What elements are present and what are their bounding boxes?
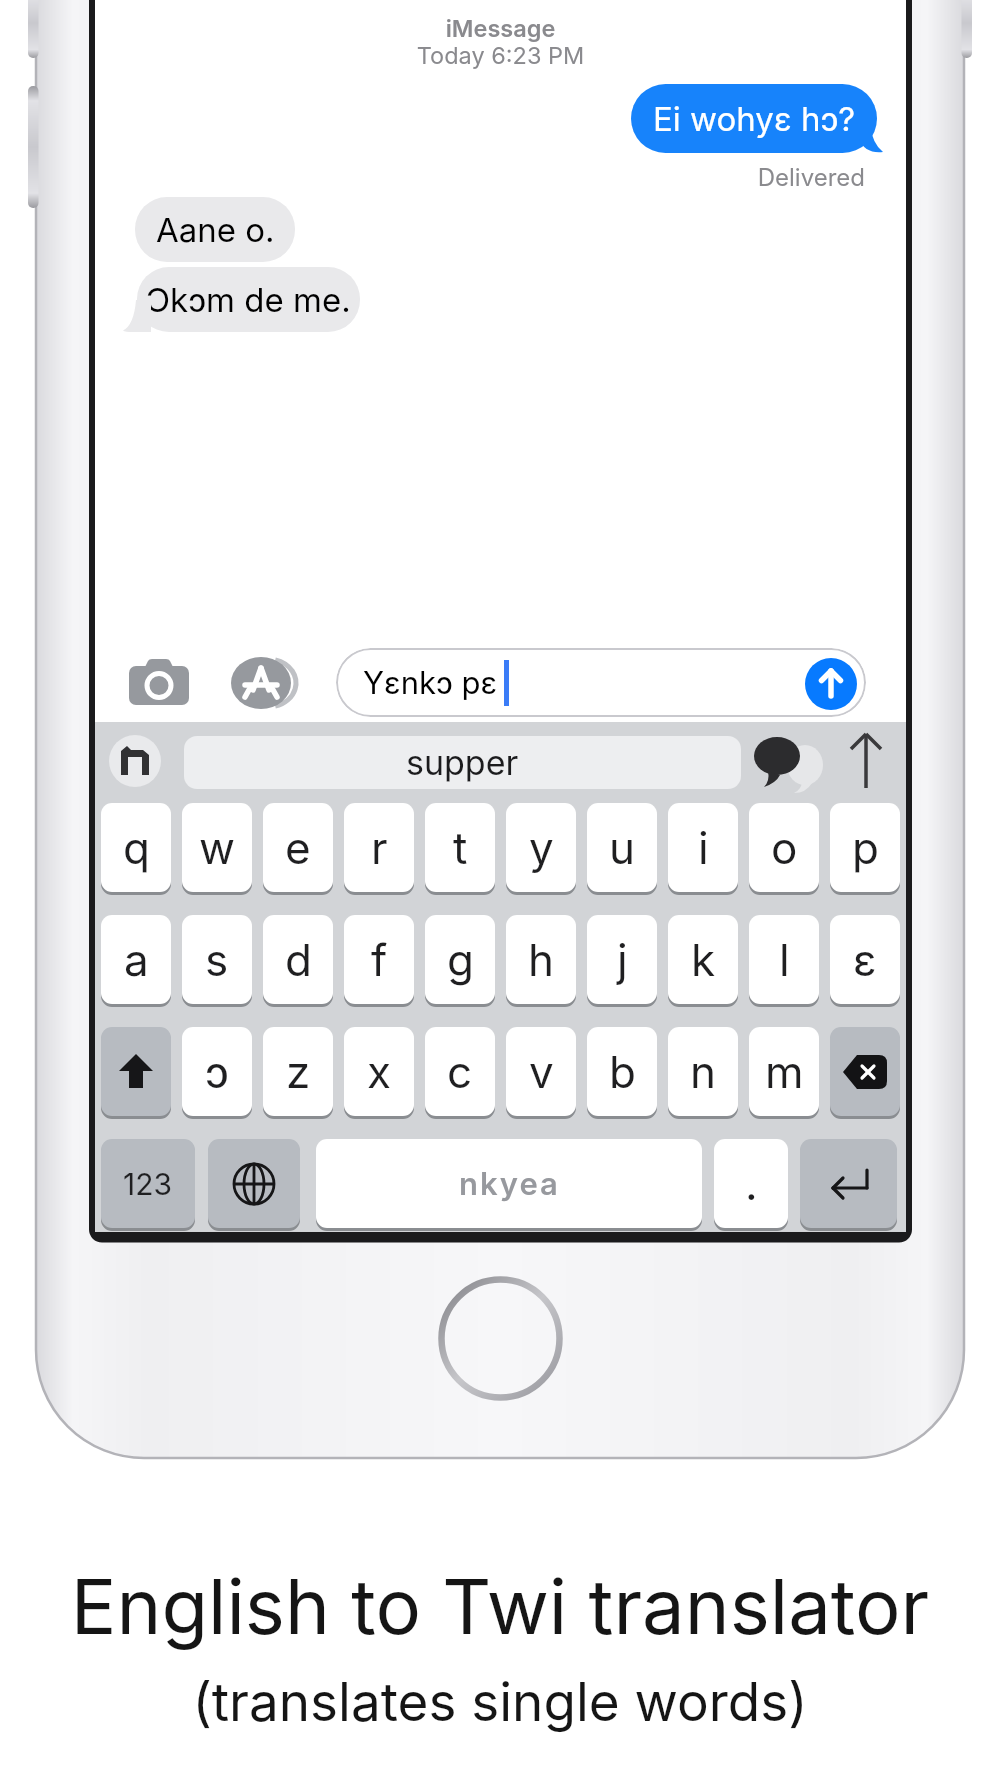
button[interactable] bbox=[830, 1027, 900, 1116]
staticText: supper bbox=[406, 742, 519, 783]
button[interactable]: w bbox=[182, 803, 252, 892]
button[interactable]: p bbox=[830, 803, 900, 892]
button[interactable]: s bbox=[182, 915, 252, 1004]
button[interactable]: Yɛnkɔ pɛ bbox=[336, 648, 866, 717]
staticText: f bbox=[371, 933, 388, 986]
button[interactable]: supper bbox=[184, 736, 741, 789]
button[interactable]: i bbox=[668, 803, 738, 892]
button[interactable]: ɛ bbox=[830, 915, 900, 1004]
button[interactable]: e bbox=[263, 803, 333, 892]
staticText: k bbox=[691, 933, 716, 986]
staticText: t bbox=[453, 821, 468, 874]
staticText: v bbox=[529, 1045, 554, 1098]
button[interactable] bbox=[800, 1139, 897, 1228]
staticText: Ɔkɔm de me. bbox=[146, 280, 351, 320]
staticText: c bbox=[447, 1045, 473, 1098]
button[interactable] bbox=[750, 735, 828, 801]
button[interactable]: v bbox=[506, 1027, 576, 1116]
staticText: e bbox=[285, 821, 311, 874]
staticText: r bbox=[371, 821, 388, 874]
staticText: l bbox=[779, 933, 790, 986]
button[interactable]: f bbox=[344, 915, 414, 1004]
button[interactable]: q bbox=[101, 803, 171, 892]
button[interactable]: r bbox=[344, 803, 414, 892]
button[interactable] bbox=[129, 659, 189, 705]
staticText: h bbox=[528, 933, 555, 986]
button[interactable]: o bbox=[749, 803, 819, 892]
staticText: a bbox=[124, 933, 149, 986]
staticText: nkyea bbox=[459, 1165, 560, 1203]
button[interactable]: g bbox=[425, 915, 495, 1004]
button[interactable] bbox=[231, 657, 299, 709]
button[interactable]: j bbox=[587, 915, 657, 1004]
staticText: ɔ bbox=[205, 1045, 229, 1098]
staticText: d bbox=[285, 933, 312, 986]
staticText: English to Twi translator bbox=[0, 1560, 1000, 1652]
staticText: Delivered bbox=[665, 163, 865, 191]
staticText: m bbox=[765, 1045, 804, 1098]
button[interactable]: l bbox=[749, 915, 819, 1004]
button[interactable]: z bbox=[263, 1027, 333, 1116]
staticText: q bbox=[123, 821, 150, 874]
staticText: (translates single words) bbox=[0, 1670, 1000, 1734]
staticText: iMessage bbox=[95, 14, 906, 42]
button[interactable]: Ɔkɔm de me. bbox=[137, 267, 360, 332]
button[interactable] bbox=[109, 735, 161, 787]
staticText: o bbox=[771, 821, 798, 874]
button[interactable]: h bbox=[506, 915, 576, 1004]
staticText: ɛ bbox=[853, 933, 877, 986]
staticText: Aane o. bbox=[156, 210, 275, 250]
button[interactable]: ɔ bbox=[182, 1027, 252, 1116]
staticText: z bbox=[286, 1045, 311, 1098]
button[interactable] bbox=[208, 1139, 300, 1228]
staticText: i bbox=[698, 821, 709, 874]
staticText: w bbox=[199, 821, 236, 874]
button[interactable] bbox=[101, 1027, 171, 1116]
staticText: g bbox=[447, 933, 474, 986]
button[interactable]: Aane o. bbox=[135, 197, 295, 262]
staticText: u bbox=[609, 821, 636, 874]
button[interactable]: d bbox=[263, 915, 333, 1004]
staticText: s bbox=[205, 933, 229, 986]
button[interactable]: x bbox=[344, 1027, 414, 1116]
button[interactable]: t bbox=[425, 803, 495, 892]
button[interactable]: b bbox=[587, 1027, 657, 1116]
staticText: 123 bbox=[123, 1166, 173, 1202]
button[interactable]: c bbox=[425, 1027, 495, 1116]
button[interactable]: k bbox=[668, 915, 738, 1004]
staticText: j bbox=[617, 933, 628, 986]
button[interactable]: n bbox=[668, 1027, 738, 1116]
button[interactable]: . bbox=[714, 1139, 788, 1228]
button[interactable] bbox=[847, 732, 885, 790]
button[interactable]: 123 bbox=[101, 1139, 195, 1228]
staticText: y bbox=[529, 821, 554, 874]
button[interactable]: y bbox=[506, 803, 576, 892]
staticText: Today 6:23 PM bbox=[95, 41, 906, 69]
button[interactable] bbox=[805, 658, 857, 710]
staticText: n bbox=[690, 1045, 716, 1098]
button[interactable]: u bbox=[587, 803, 657, 892]
staticText: p bbox=[852, 821, 879, 874]
staticText: Ei wohyɛ hɔ? bbox=[653, 99, 856, 139]
staticText: Yɛnkɔ pɛ bbox=[363, 664, 498, 702]
staticText: x bbox=[367, 1045, 392, 1098]
staticText: . bbox=[745, 1157, 758, 1210]
button[interactable]: a bbox=[101, 915, 171, 1004]
staticText: b bbox=[609, 1045, 636, 1098]
button[interactable]: nkyea bbox=[316, 1139, 702, 1228]
button[interactable]: m bbox=[749, 1027, 819, 1116]
button[interactable]: Ei wohyɛ hɔ? bbox=[631, 84, 877, 153]
